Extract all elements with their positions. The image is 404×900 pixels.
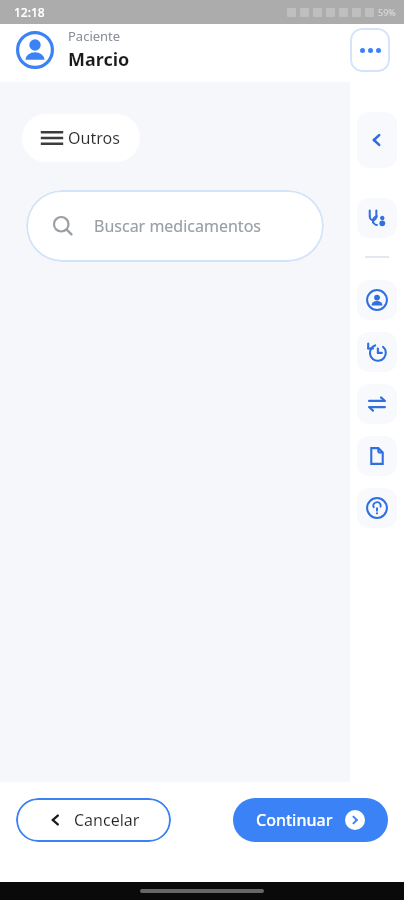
button[interactable]: Mais opções [350, 28, 390, 72]
button[interactable]: Histórico [357, 332, 397, 372]
button[interactable]: Médico [357, 198, 397, 238]
staticText: Cancelar [74, 809, 140, 831]
staticText: Paciente [68, 27, 121, 45]
staticText: Buscar medicamentos [94, 215, 261, 237]
button[interactable]: Ajuda [357, 488, 397, 528]
button[interactable]: Perfil [357, 280, 397, 320]
button[interactable]: Documento [357, 436, 397, 476]
staticText: Marcio [68, 47, 130, 72]
staticText: 12:18 [14, 4, 45, 20]
button[interactable]: Continuar [233, 798, 388, 842]
button[interactable]: Trocar [357, 384, 397, 424]
button[interactable] [16, 31, 54, 69]
button[interactable]: Outros [22, 114, 140, 162]
staticText: Continuar [256, 809, 333, 831]
button[interactable]: Cancelar [16, 798, 171, 842]
staticText: Outros [68, 127, 120, 149]
button[interactable]: Voltar [357, 112, 397, 168]
staticText: 59% [378, 6, 396, 18]
button[interactable]: Buscar medicamentos [26, 190, 324, 262]
